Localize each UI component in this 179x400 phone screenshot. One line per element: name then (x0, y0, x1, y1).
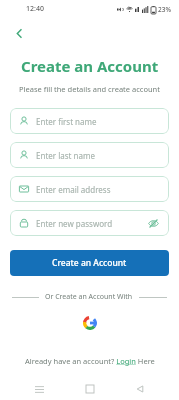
button[interactable]: Enter email address (10, 176, 169, 202)
staticText: Create an Account (52, 257, 127, 269)
button[interactable]: Already have an account? Login Here (0, 356, 179, 366)
button[interactable]: Enter new password (10, 210, 169, 236)
button[interactable]: Back (129, 378, 151, 400)
staticText: 23% (158, 5, 171, 14)
staticText: Create an Account (21, 56, 159, 76)
staticText: Enter last name (36, 150, 95, 161)
button[interactable]: Home (79, 378, 101, 400)
button[interactable]: Recent apps (28, 378, 50, 400)
button[interactable]: Enter first name (10, 108, 169, 134)
staticText: Enter email address (36, 184, 111, 195)
staticText: Enter new password (36, 218, 113, 229)
staticText: 12:40 (26, 4, 44, 14)
staticText: Already have an account? Login Here (25, 356, 155, 366)
button[interactable]: Enter last name (10, 142, 169, 168)
staticText: Or Create an Account With (45, 292, 133, 302)
button[interactable]: Sign up with Google (79, 312, 101, 334)
button[interactable]: Back (8, 22, 30, 44)
button[interactable]: Show password (147, 217, 160, 230)
button[interactable]: Create an Account (10, 250, 169, 276)
staticText: Please fill the details and create accou… (19, 84, 160, 94)
staticText: Enter first name (36, 116, 97, 127)
